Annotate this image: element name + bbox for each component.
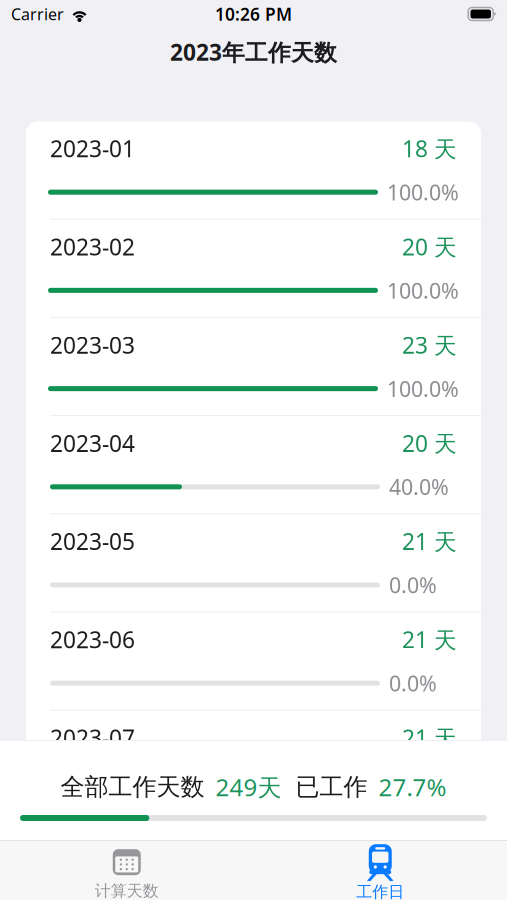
button[interactable]: 计算天数 <box>0 840 253 900</box>
staticText: 20 天 <box>402 428 457 458</box>
staticText: 21 天 <box>402 624 457 654</box>
staticText: Carrier <box>11 3 64 25</box>
staticText: 20 天 <box>402 232 457 262</box>
staticText: 已工作 <box>295 772 367 802</box>
staticText: 2023-05 <box>50 526 135 556</box>
staticText: 0.0% <box>389 767 437 795</box>
staticText: 全部工作天数 <box>60 772 204 802</box>
staticText: 2023-01 <box>50 133 135 163</box>
staticText: 2023-04 <box>50 428 135 458</box>
staticText: 0.0% <box>389 571 437 599</box>
staticText: 100.0% <box>387 276 459 304</box>
staticText: 100.0% <box>387 374 459 403</box>
staticText: 2023-03 <box>50 330 135 360</box>
staticText: 2023-02 <box>50 232 135 262</box>
staticText: 2023-06 <box>50 624 135 654</box>
staticText: 21 天 <box>402 526 457 556</box>
staticText: 10:26 PM <box>215 2 292 25</box>
staticText: 工作日 <box>356 882 404 900</box>
staticText: 计算天数 <box>95 881 159 900</box>
staticText: 2023年工作天数 <box>170 37 337 67</box>
staticText: 18 天 <box>402 133 457 163</box>
staticText: 23 天 <box>402 330 457 360</box>
staticText: 40.0% <box>389 473 449 501</box>
button[interactable]: 工作日 <box>253 840 507 900</box>
staticText: 100.0% <box>387 178 459 206</box>
staticText: 2023-07 <box>50 723 135 753</box>
staticText: 27.7% <box>378 771 446 803</box>
staticText: 249天 <box>215 771 281 803</box>
staticText: 0.0% <box>389 669 437 697</box>
staticText: 21 天 <box>402 723 457 753</box>
